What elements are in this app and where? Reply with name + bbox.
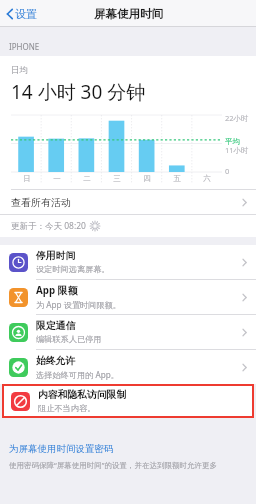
button[interactable]: App 限额 [0, 280, 256, 315]
staticText: 编辑联系人已停用 [36, 334, 102, 344]
staticText: 查看所有活动 [11, 196, 71, 209]
staticText: 阻止不当内容。 [38, 403, 96, 413]
staticText: IPHONE [9, 41, 40, 52]
staticText: 使用密码保障“屏幕使用时间”的设置，并在达到限额时允许更多 [9, 460, 217, 470]
staticText: 14 小时 30 分钟 [11, 79, 146, 105]
staticText: 日均 [11, 65, 28, 76]
button[interactable]: 限定通信 [0, 315, 256, 350]
staticText: 日 [23, 174, 31, 183]
staticText: 四 [143, 174, 151, 183]
button[interactable]: 始终允许 [0, 350, 256, 384]
staticText: 内容和隐私访问限制 [38, 389, 127, 401]
staticText: 始终允许 [36, 355, 76, 367]
staticText: 11小时 [225, 145, 249, 155]
staticText: 0 [225, 166, 230, 176]
staticText: 二 [83, 174, 91, 183]
staticText: 限定通信 [36, 320, 76, 332]
staticText: 三 [113, 174, 121, 183]
staticText: 平均 [225, 137, 240, 146]
button[interactable]: 查看所有活动 [0, 190, 256, 214]
staticText: 五 [173, 174, 181, 183]
staticText: 22小时 [225, 113, 249, 123]
staticText: 设置 [15, 7, 37, 21]
button[interactable]: 为屏幕使用时间设置密码 [9, 443, 114, 455]
staticText: 停用时间 [36, 250, 76, 262]
staticText: 一 [53, 174, 61, 183]
staticText: 更新于：今天 08:20 [11, 220, 86, 232]
button[interactable]: 内容和隐私访问限制 [2, 384, 254, 418]
staticText: 为 App 设置时间限额。 [36, 299, 122, 310]
staticText: 选择始终可用的 App。 [36, 369, 119, 380]
staticText: 六 [203, 174, 211, 183]
button[interactable]: 设置 [4, 4, 39, 24]
staticText: 设定时间远离屏幕。 [36, 264, 110, 274]
button[interactable]: 停用时间 [0, 245, 256, 280]
staticText: App 限额 [36, 284, 78, 297]
staticText: 屏幕使用时间 [94, 7, 163, 21]
